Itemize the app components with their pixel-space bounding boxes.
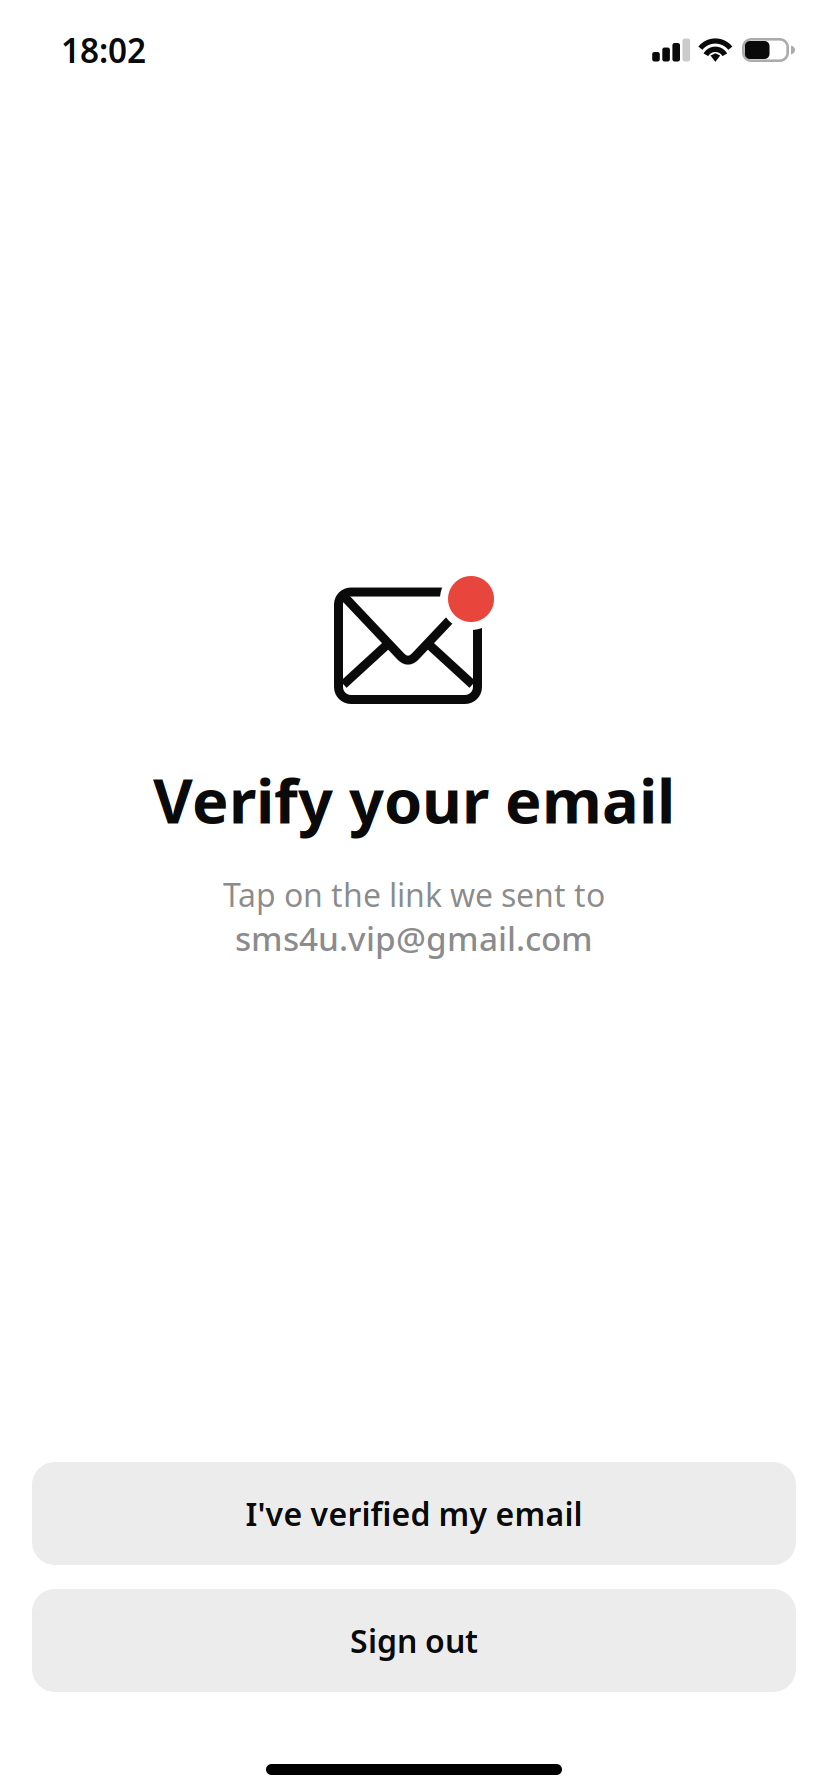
staticText: 18:02 — [61, 28, 146, 72]
staticText: Sign out — [350, 1619, 478, 1662]
button[interactable]: Sign out — [32, 1589, 796, 1692]
staticText: Verify your email — [153, 759, 675, 840]
staticText: I've verified my email — [245, 1492, 582, 1535]
staticText: sms4u.vip@gmail.com — [235, 916, 593, 960]
staticText: Tap on the link we sent to — [223, 873, 605, 916]
button[interactable]: I've verified my email — [32, 1462, 796, 1565]
